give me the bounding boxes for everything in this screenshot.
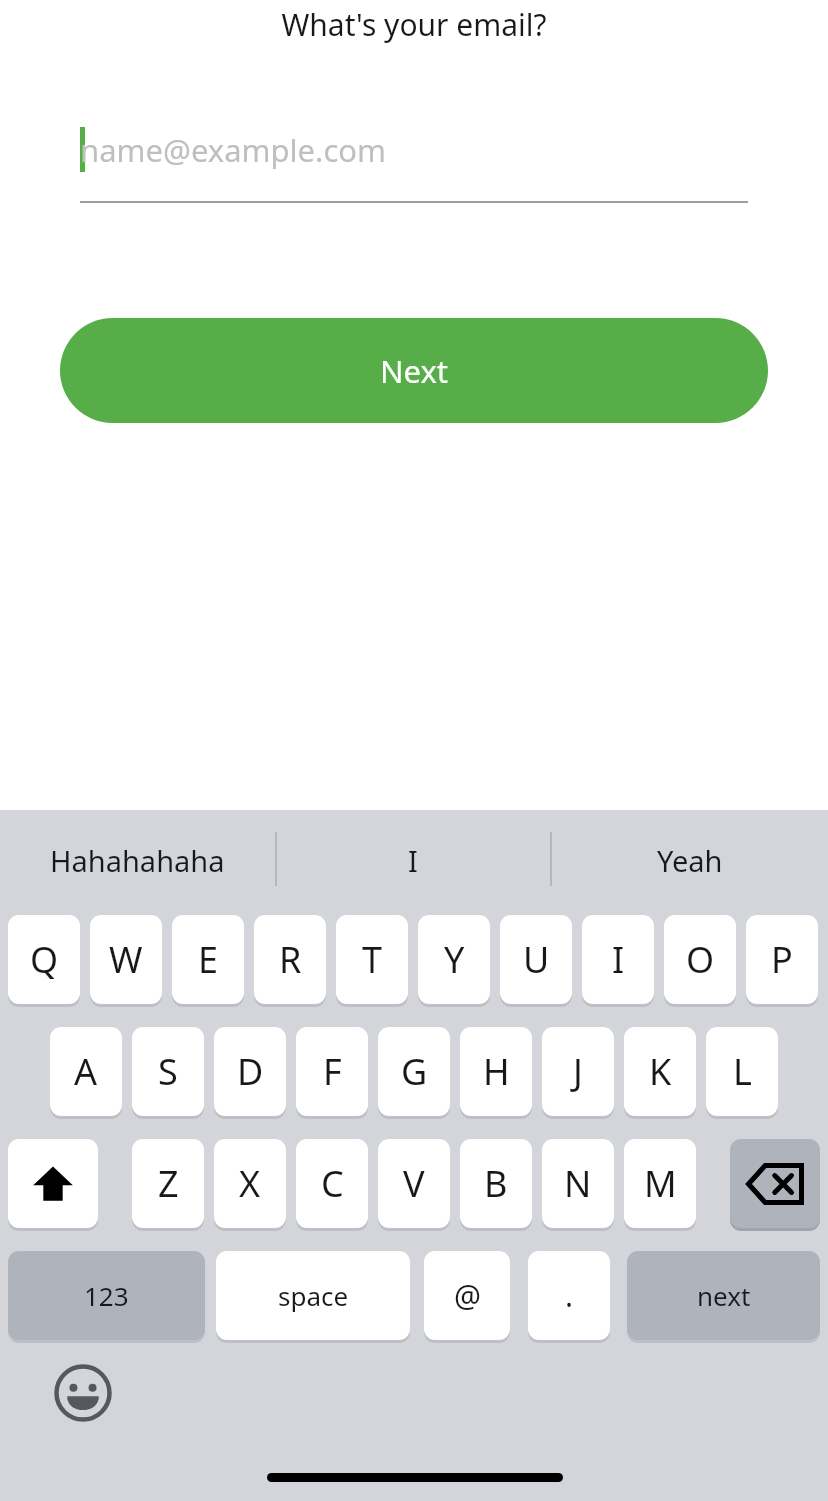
button[interactable]: Hahahahaha	[0, 810, 275, 910]
staticText: @	[454, 1275, 481, 1316]
staticText: N	[564, 1159, 592, 1208]
button[interactable]: I	[582, 915, 654, 1004]
button[interactable]: O	[664, 915, 736, 1004]
staticText: B	[484, 1159, 508, 1208]
button[interactable]: Emoji keyboard	[45, 1355, 121, 1431]
button[interactable]: J	[542, 1027, 614, 1116]
staticText: T	[362, 935, 383, 984]
button[interactable]: R	[254, 915, 326, 1004]
button[interactable]: K	[624, 1027, 696, 1116]
staticText: A	[74, 1047, 98, 1096]
button[interactable]: H	[460, 1027, 532, 1116]
button[interactable]: E	[172, 915, 244, 1004]
button[interactable]: X	[214, 1139, 286, 1228]
staticText: L	[733, 1047, 752, 1096]
staticText: R	[279, 935, 302, 984]
staticText: V	[403, 1159, 425, 1208]
staticText: E	[198, 935, 219, 984]
staticText: J	[573, 1047, 583, 1096]
button[interactable]: S	[132, 1027, 204, 1116]
button[interactable]: A	[50, 1027, 122, 1116]
button[interactable]: C	[296, 1139, 368, 1228]
button[interactable]: 123	[8, 1251, 205, 1340]
button[interactable]: V	[378, 1139, 450, 1228]
staticText: H	[483, 1047, 510, 1096]
staticText: Q	[30, 935, 59, 984]
button[interactable]: N	[542, 1139, 614, 1228]
staticText: Next	[380, 350, 449, 392]
staticText: name@example.com	[80, 129, 387, 171]
staticText: M	[644, 1159, 677, 1208]
button[interactable]: F	[296, 1027, 368, 1116]
button[interactable]: P	[746, 915, 818, 1004]
staticText: space	[278, 1278, 349, 1313]
button[interactable]: Yeah	[552, 810, 828, 910]
staticText: K	[649, 1047, 672, 1096]
button[interactable]: M	[624, 1139, 696, 1228]
staticText: D	[237, 1047, 264, 1096]
staticText: C	[321, 1159, 344, 1208]
button[interactable]: name@example.com	[80, 122, 748, 178]
staticText: F	[323, 1047, 342, 1096]
staticText: P	[771, 935, 793, 984]
button[interactable]: .	[528, 1251, 610, 1340]
staticText: I	[612, 935, 625, 984]
button[interactable]: I	[276, 810, 550, 910]
button[interactable]: Backspace	[730, 1139, 820, 1228]
staticText: next	[697, 1278, 751, 1313]
button[interactable]: B	[460, 1139, 532, 1228]
staticText: G	[401, 1047, 428, 1096]
staticText: O	[686, 935, 715, 984]
staticText: .	[565, 1275, 574, 1316]
button[interactable]: space	[216, 1251, 410, 1340]
staticText: Hahahahaha	[50, 841, 225, 880]
button[interactable]: D	[214, 1027, 286, 1116]
button[interactable]: Y	[418, 915, 490, 1004]
button[interactable]: Z	[132, 1139, 204, 1228]
button[interactable]: G	[378, 1027, 450, 1116]
button[interactable]: @	[424, 1251, 510, 1340]
staticText: Z	[158, 1159, 179, 1208]
staticText: I	[408, 841, 418, 880]
staticText: What's your email?	[281, 4, 547, 45]
staticText: X	[239, 1159, 261, 1208]
staticText: W	[109, 935, 143, 984]
button[interactable]: Q	[8, 915, 80, 1004]
button[interactable]: W	[90, 915, 162, 1004]
button[interactable]: U	[500, 915, 572, 1004]
staticText: Y	[444, 935, 465, 984]
button[interactable]: L	[706, 1027, 778, 1116]
button[interactable]: Shift	[8, 1139, 98, 1228]
button[interactable]: Next	[60, 318, 768, 423]
button[interactable]: T	[336, 915, 408, 1004]
staticText: S	[158, 1047, 178, 1096]
staticText: 123	[84, 1278, 129, 1313]
staticText: U	[523, 935, 550, 984]
button[interactable]: next	[627, 1251, 820, 1340]
staticText: Yeah	[657, 841, 723, 880]
